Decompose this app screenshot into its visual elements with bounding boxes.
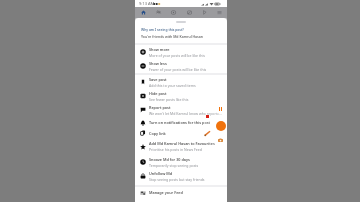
staticText: Report post — [149, 105, 171, 110]
staticText: More of your posts will be like this — [149, 53, 205, 58]
staticText: Turn on notifications for this post — [149, 120, 211, 125]
button[interactable]: Copy link — [135, 128, 227, 138]
staticText: Temporarily stop seeing posts — [149, 163, 199, 168]
button[interactable]: Friends — [151, 7, 165, 18]
staticText: Add Md Kamrul Hasan to Favourites — [149, 141, 215, 146]
staticText: Fewer of your posts will be like this — [149, 67, 207, 72]
staticText: Unfollow Md — [149, 171, 173, 176]
staticText: Why am I seeing this post? — [141, 27, 184, 31]
staticText: Save post — [149, 77, 167, 82]
button[interactable]: Home — [136, 7, 150, 18]
button[interactable]: Show more — [135, 45, 227, 59]
staticText: You're friends with Md Kamrul Hasan — [141, 34, 203, 39]
button[interactable]: Manage your Feed — [135, 187, 227, 198]
button[interactable]: Save post — [135, 75, 227, 89]
staticText: Prioritise his posts in News Feed — [149, 147, 202, 152]
staticText: Hide post — [149, 91, 167, 96]
staticText: Stop seeing posts but stay friends — [149, 177, 205, 182]
staticText: Copy link — [149, 131, 166, 136]
button[interactable]: Unfollow Md — [135, 169, 227, 183]
button[interactable]: Menu — [212, 7, 226, 18]
button[interactable]: Hide post — [135, 89, 227, 103]
button[interactable]: Show less — [135, 59, 227, 73]
button[interactable]: Snooze Md for 30 days — [135, 155, 227, 169]
button[interactable]: Notifications — [197, 7, 211, 18]
button[interactable]: Draw — [204, 130, 211, 136]
button[interactable]: Screenshot — [216, 136, 225, 145]
staticText: Snooze Md for 30 days — [149, 157, 190, 162]
staticText: Manage your Feed — [149, 190, 183, 195]
staticText: Add this to your saved items — [149, 83, 196, 88]
button[interactable]: Turn on notifications for this post — [135, 117, 227, 128]
staticText: See fewer posts like this — [149, 97, 189, 102]
staticText: We won't let Md Kamrul know who reported… — [149, 111, 223, 116]
button[interactable]: Pause recording — [215, 104, 225, 114]
button[interactable]: Report post — [135, 103, 227, 117]
button[interactable]: Watch — [166, 7, 180, 18]
button[interactable]: Add Md Kamrul Hasan to Favourites — [135, 138, 227, 155]
button[interactable]: Marketplace — [182, 7, 196, 18]
staticText: Show more — [149, 47, 170, 52]
staticText: 9:13 AM — [139, 1, 155, 6]
staticText: Show less — [149, 61, 167, 66]
button[interactable]: Recorder menu — [216, 121, 226, 131]
